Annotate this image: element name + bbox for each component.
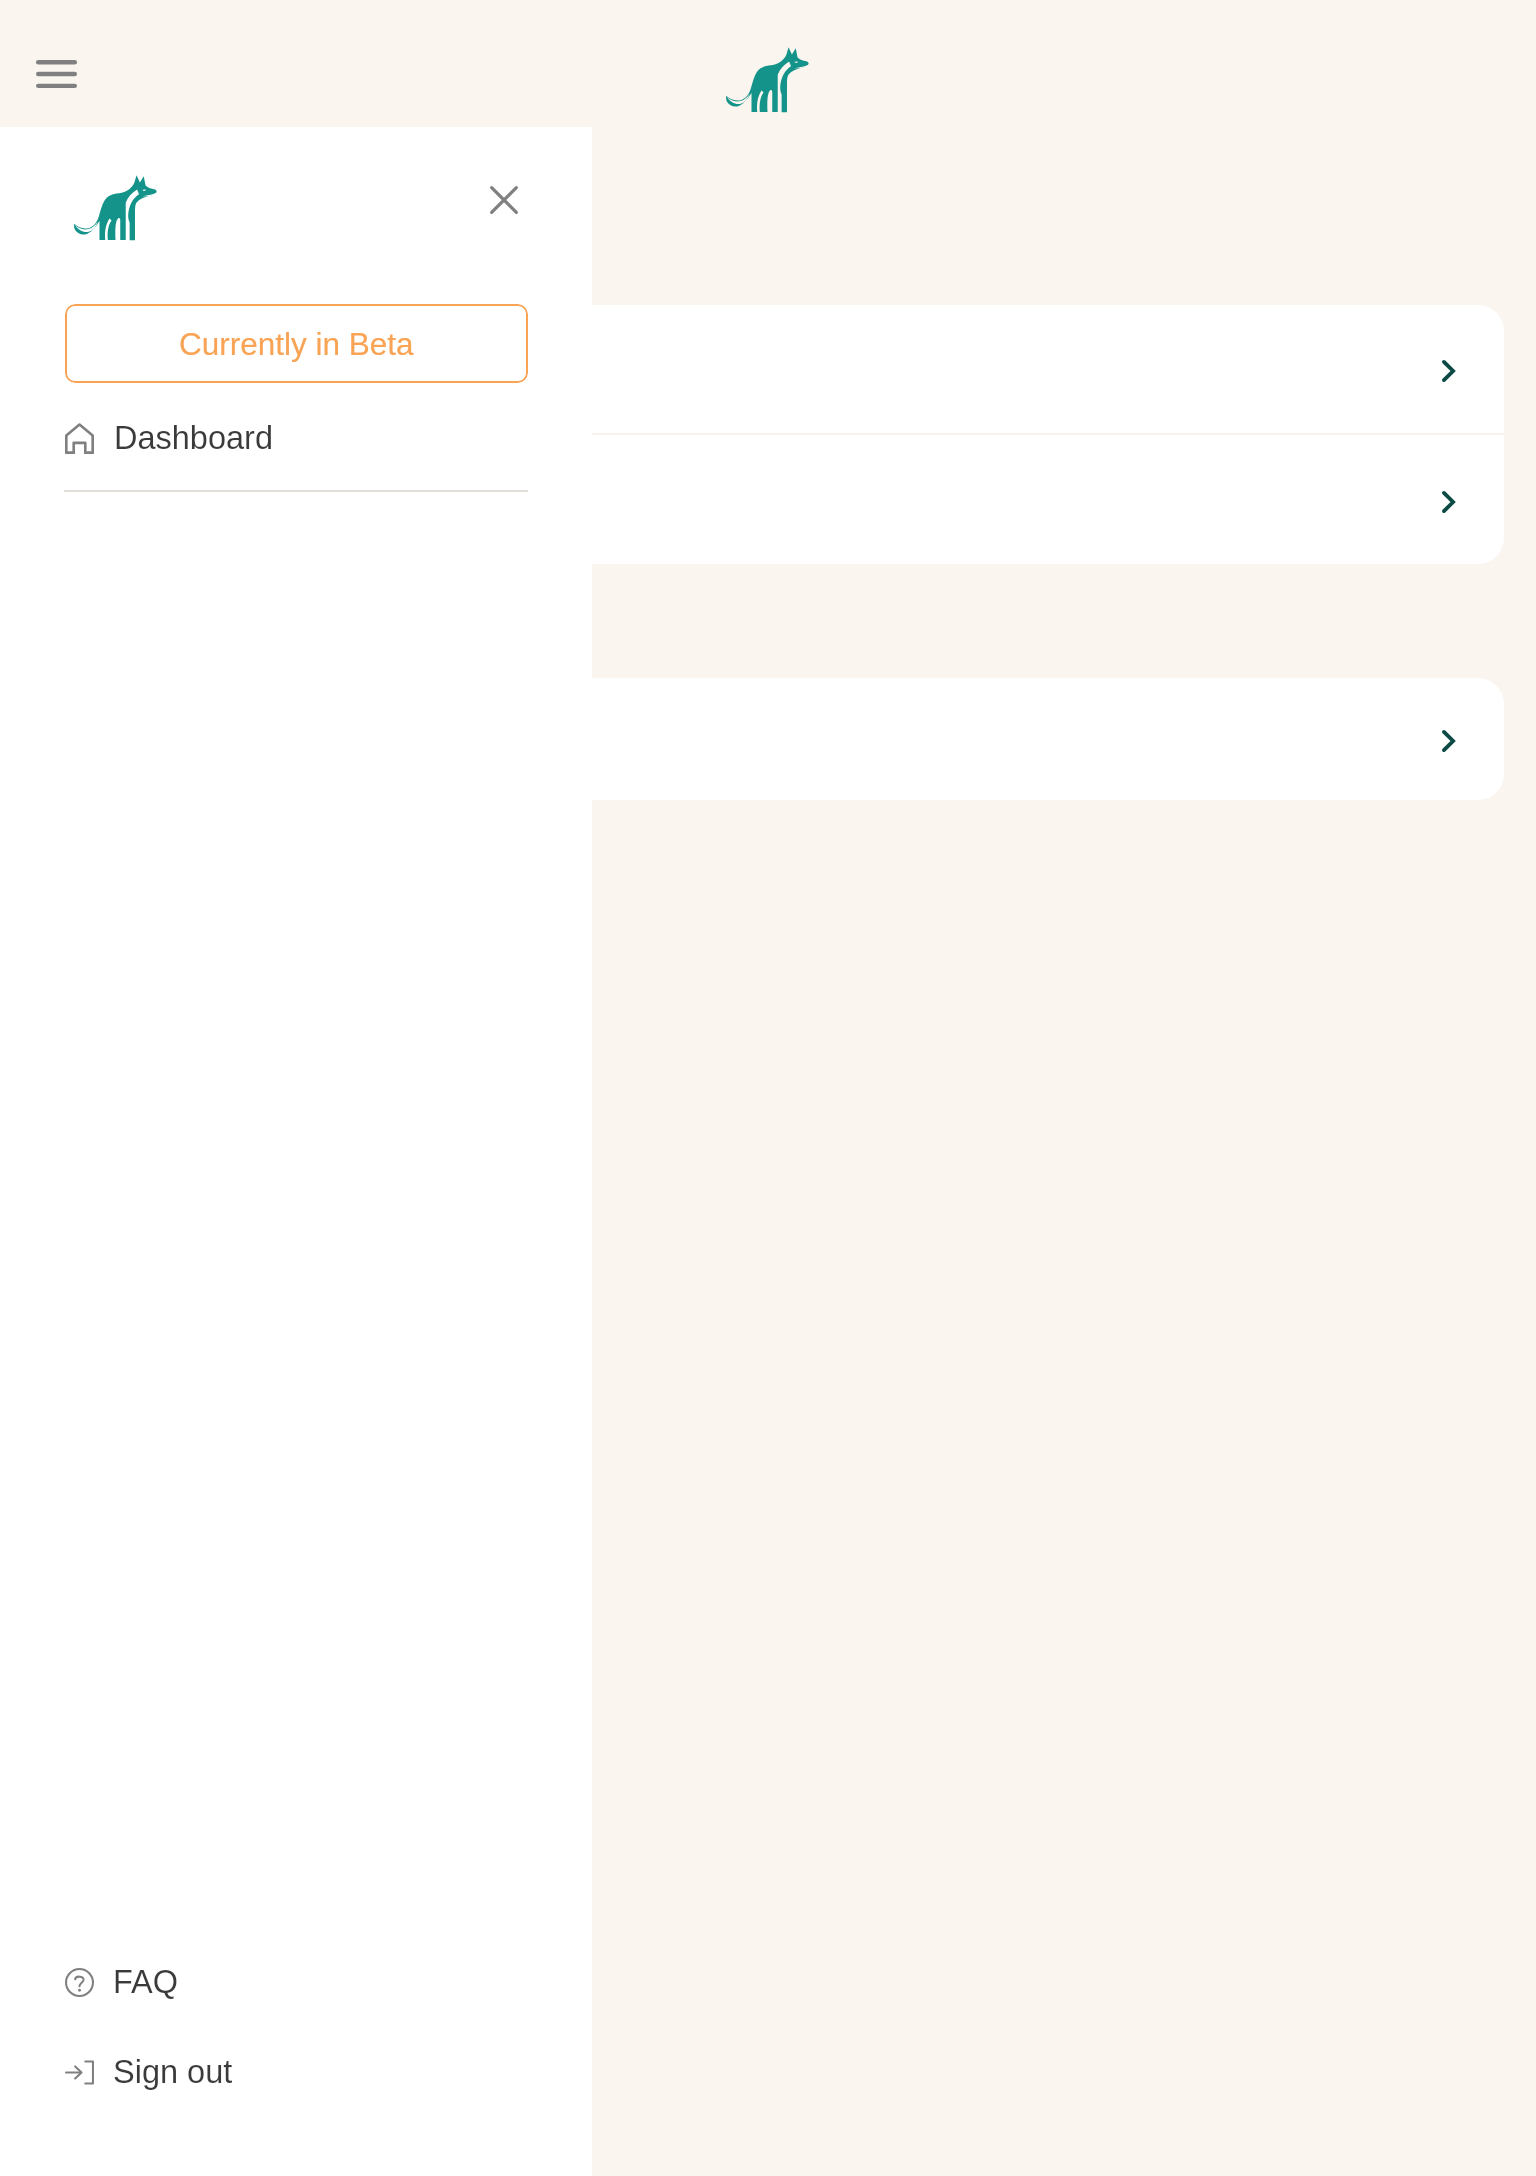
- staticText: FAQ: [113, 1964, 179, 2000]
- button[interactable]: Open details: [32, 305, 1504, 433]
- button[interactable]: FAQ: [0, 1940, 592, 2024]
- staticText: Currently in Beta: [179, 326, 414, 361]
- button[interactable]: Close navigation menu: [470, 166, 538, 234]
- button[interactable]: Open details: [32, 678, 1504, 800]
- button[interactable]: Dashboard: [0, 400, 592, 476]
- button[interactable]: Open details: [32, 435, 1504, 564]
- button[interactable]: Currently in Beta: [65, 304, 528, 383]
- button[interactable]: Open navigation menu: [28, 50, 84, 98]
- staticText: Dashboard: [114, 420, 273, 456]
- staticText: Sign out: [113, 2054, 233, 2090]
- button[interactable]: Sign out: [0, 2030, 592, 2114]
